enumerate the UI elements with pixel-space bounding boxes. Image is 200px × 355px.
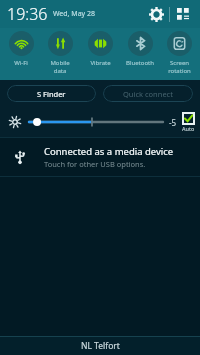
staticText: -5 [169, 117, 177, 128]
staticText: Mobile data [50, 59, 70, 75]
button[interactable]: Auto [182, 112, 195, 132]
staticText: Screen rotation [168, 59, 191, 75]
staticText: Auto [182, 125, 195, 132]
staticText: Wed, May 28 [53, 9, 95, 19]
button[interactable]: Quick connect [103, 85, 193, 102]
button[interactable]: Screen rotation [160, 28, 198, 80]
staticText: Quick connect [123, 89, 173, 99]
button[interactable]: Vibrate [81, 28, 119, 80]
button[interactable]: Connected as a media device [0, 138, 200, 176]
button[interactable]: Bluetooth [121, 28, 159, 80]
button[interactable]: S Finder [7, 85, 96, 102]
button[interactable]: Brightness [7, 114, 23, 130]
button[interactable]: Settings [143, 1, 169, 27]
staticText: Wi-Fi [14, 59, 28, 67]
button[interactable]: Wi-Fi [2, 28, 40, 80]
staticText: NL Telfort [81, 340, 120, 352]
button[interactable]: Edit quick settings [170, 1, 196, 27]
staticText: Vibrate [90, 59, 111, 67]
staticText: Connected as a media device [44, 145, 174, 158]
staticText: 19:36 [7, 3, 48, 25]
staticText: S Finder [37, 89, 66, 99]
button[interactable]: Mobile data [41, 28, 79, 80]
staticText: Bluetooth [126, 59, 154, 67]
staticText: Touch for other USB options. [44, 159, 146, 169]
button[interactable]: Brightness slider [29, 115, 163, 129]
